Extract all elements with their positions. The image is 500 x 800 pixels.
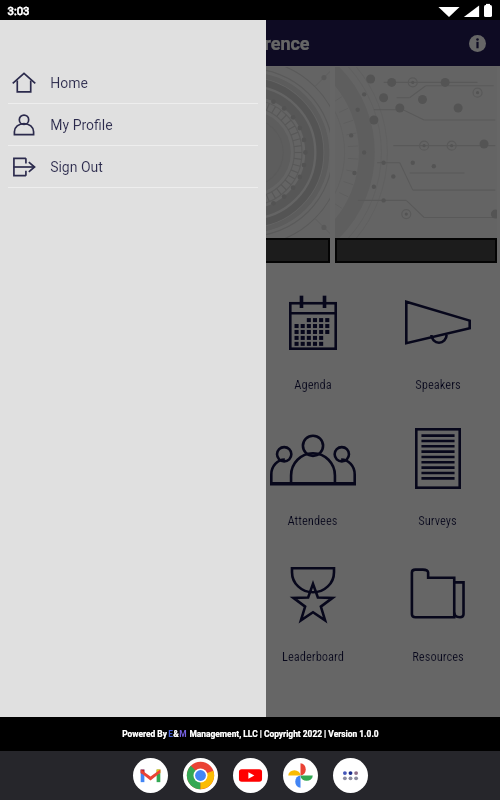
staticText: Surveys <box>418 513 457 528</box>
button[interactable]: Resources <box>375 550 500 686</box>
staticText: Resources <box>412 649 464 664</box>
button[interactable] <box>1 67 163 263</box>
staticText: Leaderboard <box>282 649 344 664</box>
button[interactable]: My Profile <box>0 104 266 145</box>
button[interactable]: Leaderboard <box>250 550 375 686</box>
staticText: Sign Out <box>50 159 103 175</box>
button[interactable]: Surveys <box>375 414 500 550</box>
button[interactable] <box>335 67 497 263</box>
button[interactable]: Home <box>0 62 266 103</box>
button[interactable]: All apps <box>325 751 375 800</box>
staticText: & <box>173 729 179 739</box>
staticText: E <box>168 729 173 739</box>
button[interactable]: Agenda <box>250 278 375 414</box>
staticText: Attendees <box>287 513 338 528</box>
button[interactable]: YouTube <box>225 751 275 800</box>
button[interactable]: Attendees <box>250 414 375 550</box>
button[interactable]: Chrome <box>175 751 225 800</box>
staticText: Management, LLC | Copyright 2022 | Versi… <box>187 729 379 739</box>
staticText: My Profile <box>50 117 113 133</box>
staticText: Home <box>50 75 88 91</box>
button[interactable]: Speakers <box>375 278 500 414</box>
staticText: Speakers <box>415 377 461 392</box>
staticText: M <box>179 729 187 739</box>
staticText: Powered By <box>121 729 168 739</box>
button[interactable]: Sign Out <box>0 146 266 187</box>
staticText: 3:03 <box>7 4 30 17</box>
button[interactable]: Photos <box>275 751 325 800</box>
button[interactable]: Information <box>462 28 492 58</box>
staticText: 2022 Technology Conference <box>72 33 310 54</box>
staticText: Agenda <box>294 377 332 392</box>
button[interactable]: Gmail <box>125 751 175 800</box>
button[interactable] <box>168 67 330 263</box>
